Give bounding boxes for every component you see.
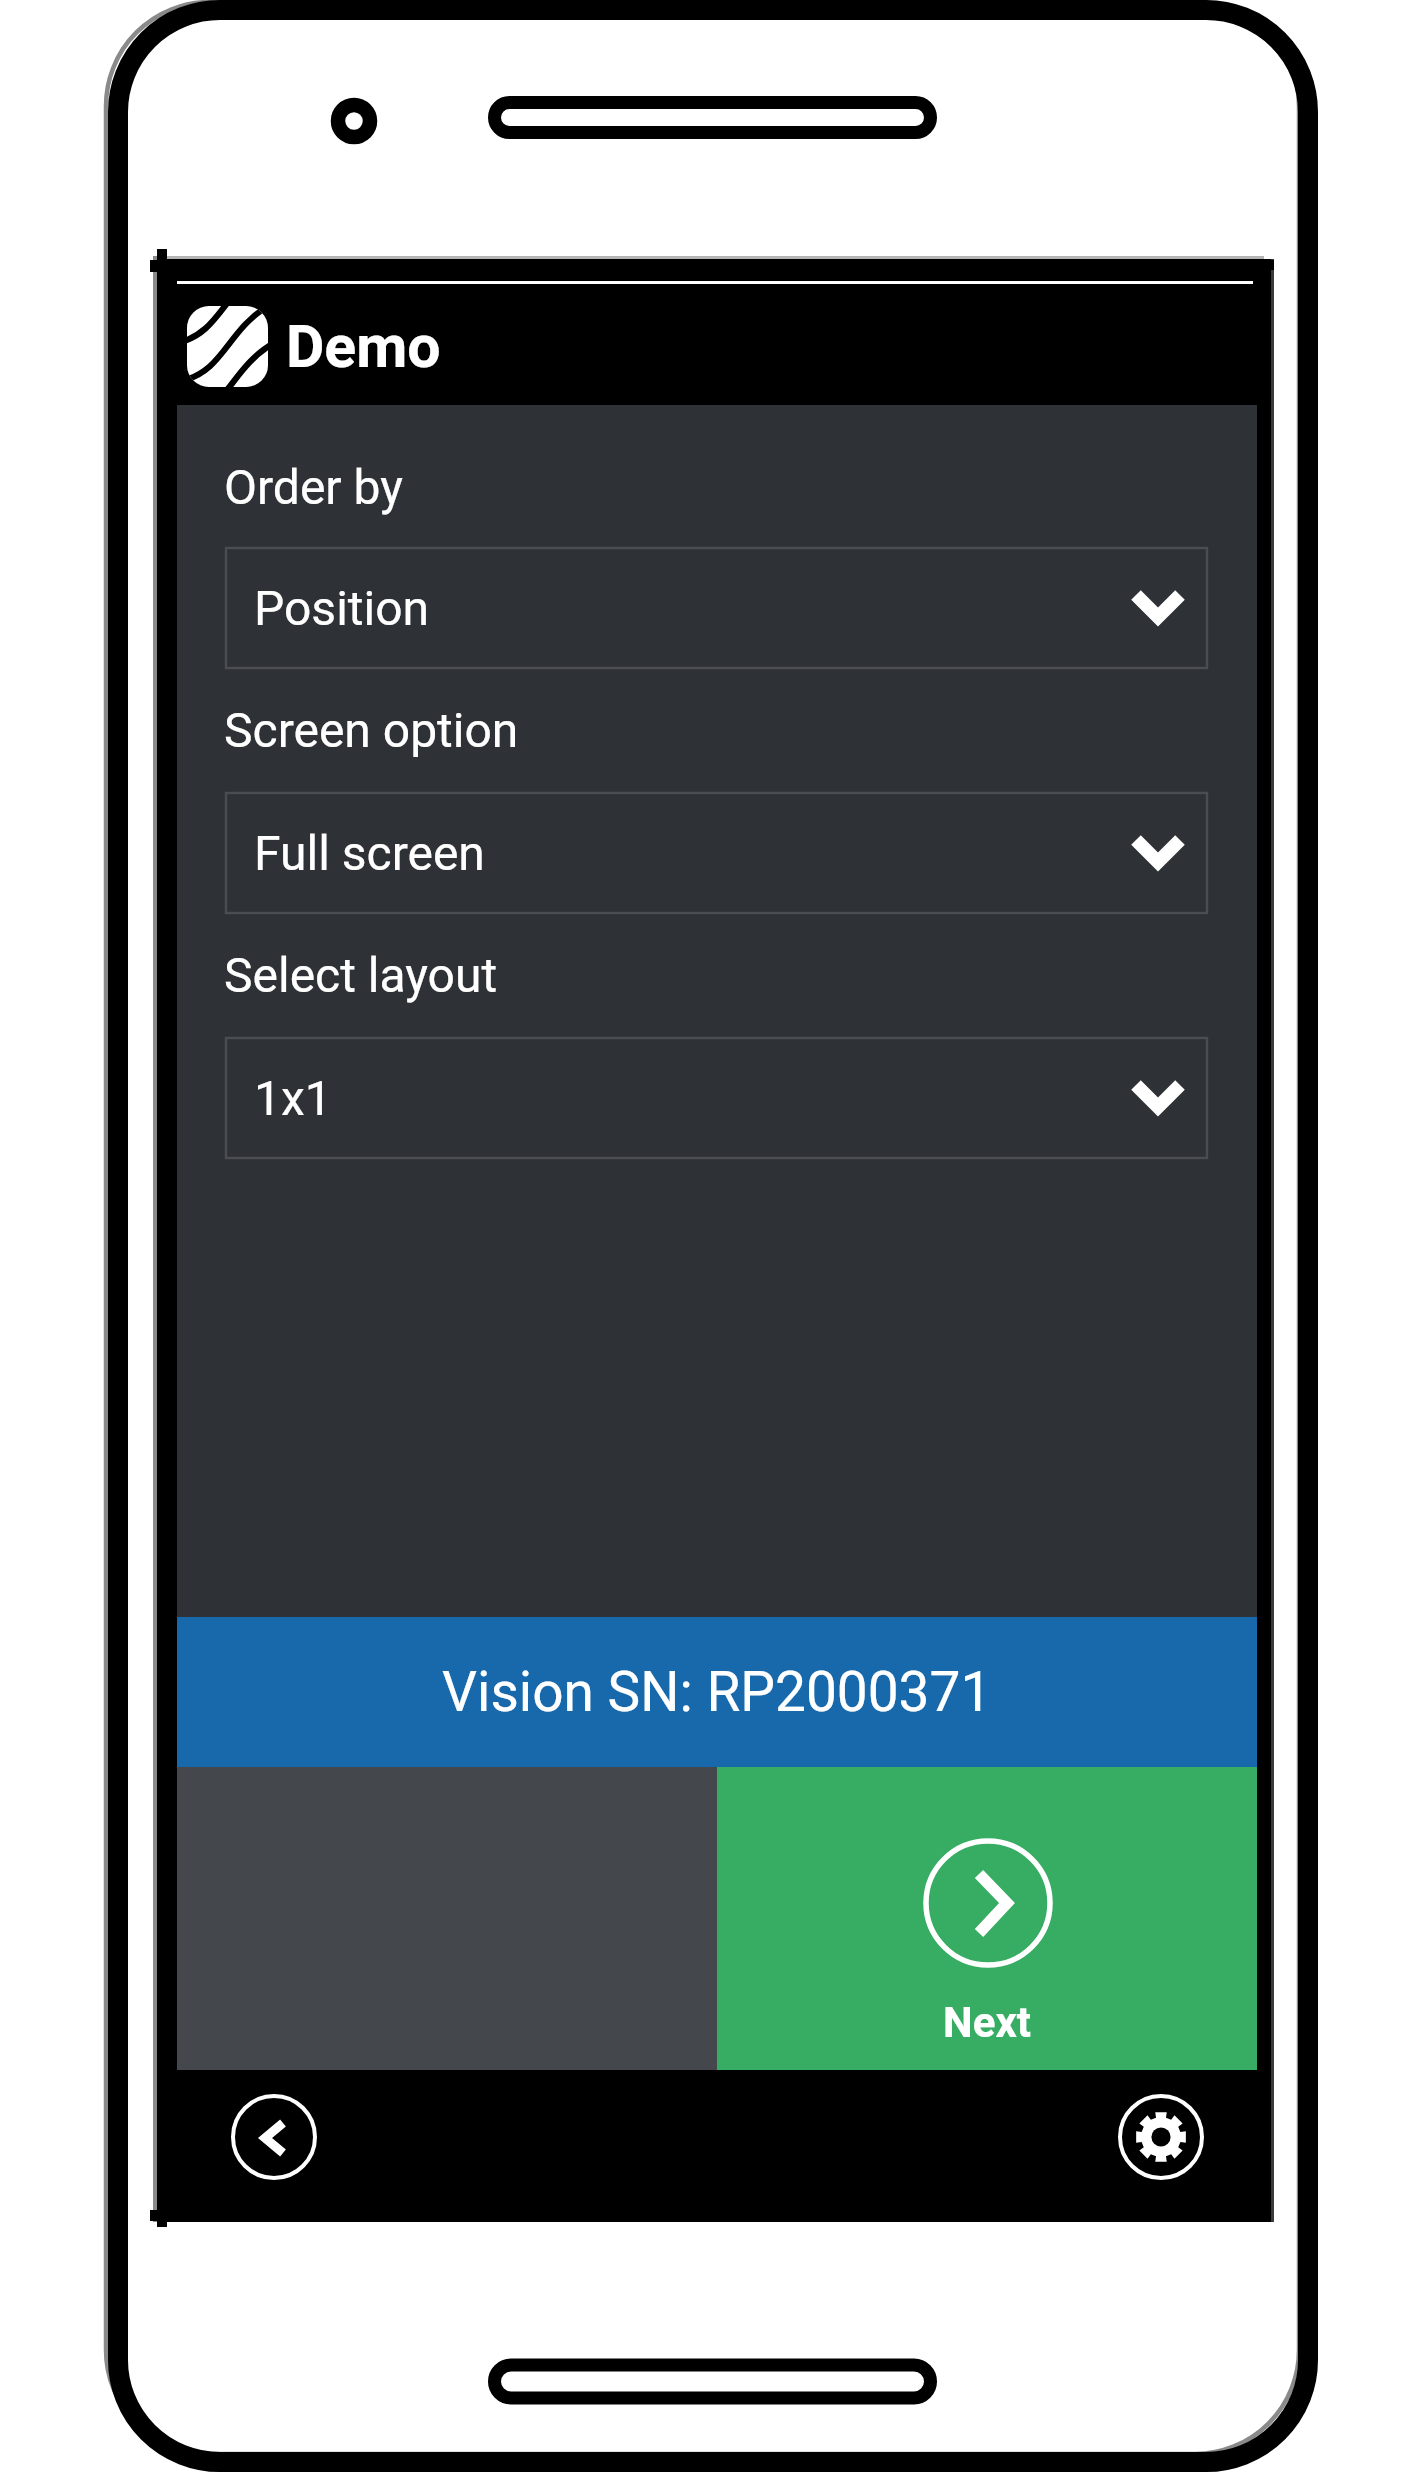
staticText: 1x1: [254, 1070, 332, 1126]
button[interactable]: Full screen: [225, 792, 1208, 914]
button[interactable]: Next: [717, 1767, 1257, 2070]
button[interactable]: Settings: [1118, 2094, 1204, 2180]
staticText: Select layout: [224, 947, 498, 1003]
staticText: Screen option: [224, 702, 519, 758]
staticText: Order by: [224, 459, 403, 515]
staticText: Vision SN: RP2000371: [442, 1660, 992, 1724]
button[interactable]: 1x1: [225, 1037, 1208, 1159]
button[interactable]: Back: [231, 2094, 317, 2180]
staticText: Full screen: [254, 825, 485, 881]
staticText: Next: [943, 1998, 1031, 2047]
staticText: Demo: [286, 312, 441, 381]
staticText: Position: [254, 580, 430, 636]
button[interactable]: Vision SN: RP2000371: [177, 1617, 1257, 1767]
button[interactable]: Position: [225, 547, 1208, 669]
